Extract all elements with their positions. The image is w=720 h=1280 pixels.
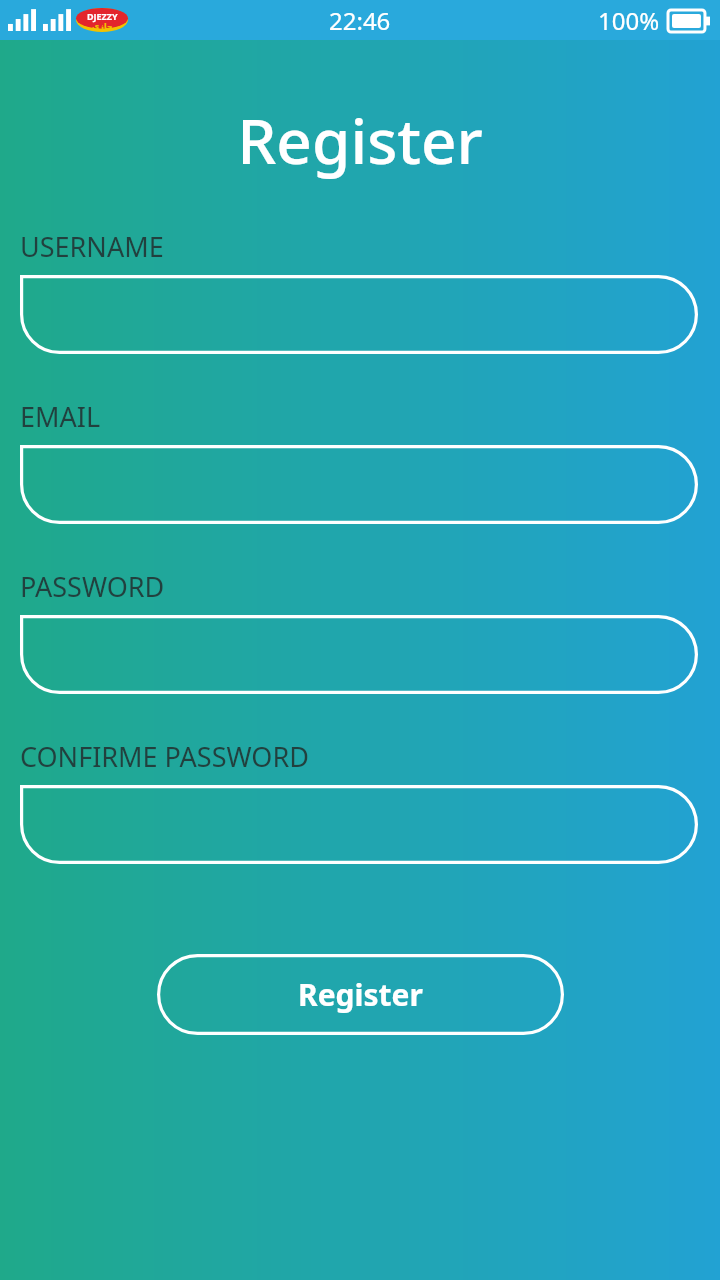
- staticText: 22:46: [329, 4, 391, 37]
- button[interactable]: USERNAME: [20, 275, 698, 354]
- staticText: Register: [298, 974, 423, 1015]
- staticText: Register: [0, 98, 720, 182]
- staticText: EMAIL: [20, 398, 101, 435]
- staticText: CONFIRME PASSWORD: [20, 738, 309, 775]
- button[interactable]: PASSWORD: [20, 615, 698, 694]
- staticText: USERNAME: [20, 228, 164, 265]
- button[interactable]: Register: [157, 954, 564, 1035]
- staticText: 100%: [598, 4, 660, 37]
- button[interactable]: EMAIL: [20, 445, 698, 524]
- staticText: DJEZZY: [87, 10, 118, 22]
- staticText: PASSWORD: [20, 568, 165, 605]
- button[interactable]: CONFIRME PASSWORD: [20, 785, 698, 864]
- staticText: جازي: [92, 22, 113, 31]
